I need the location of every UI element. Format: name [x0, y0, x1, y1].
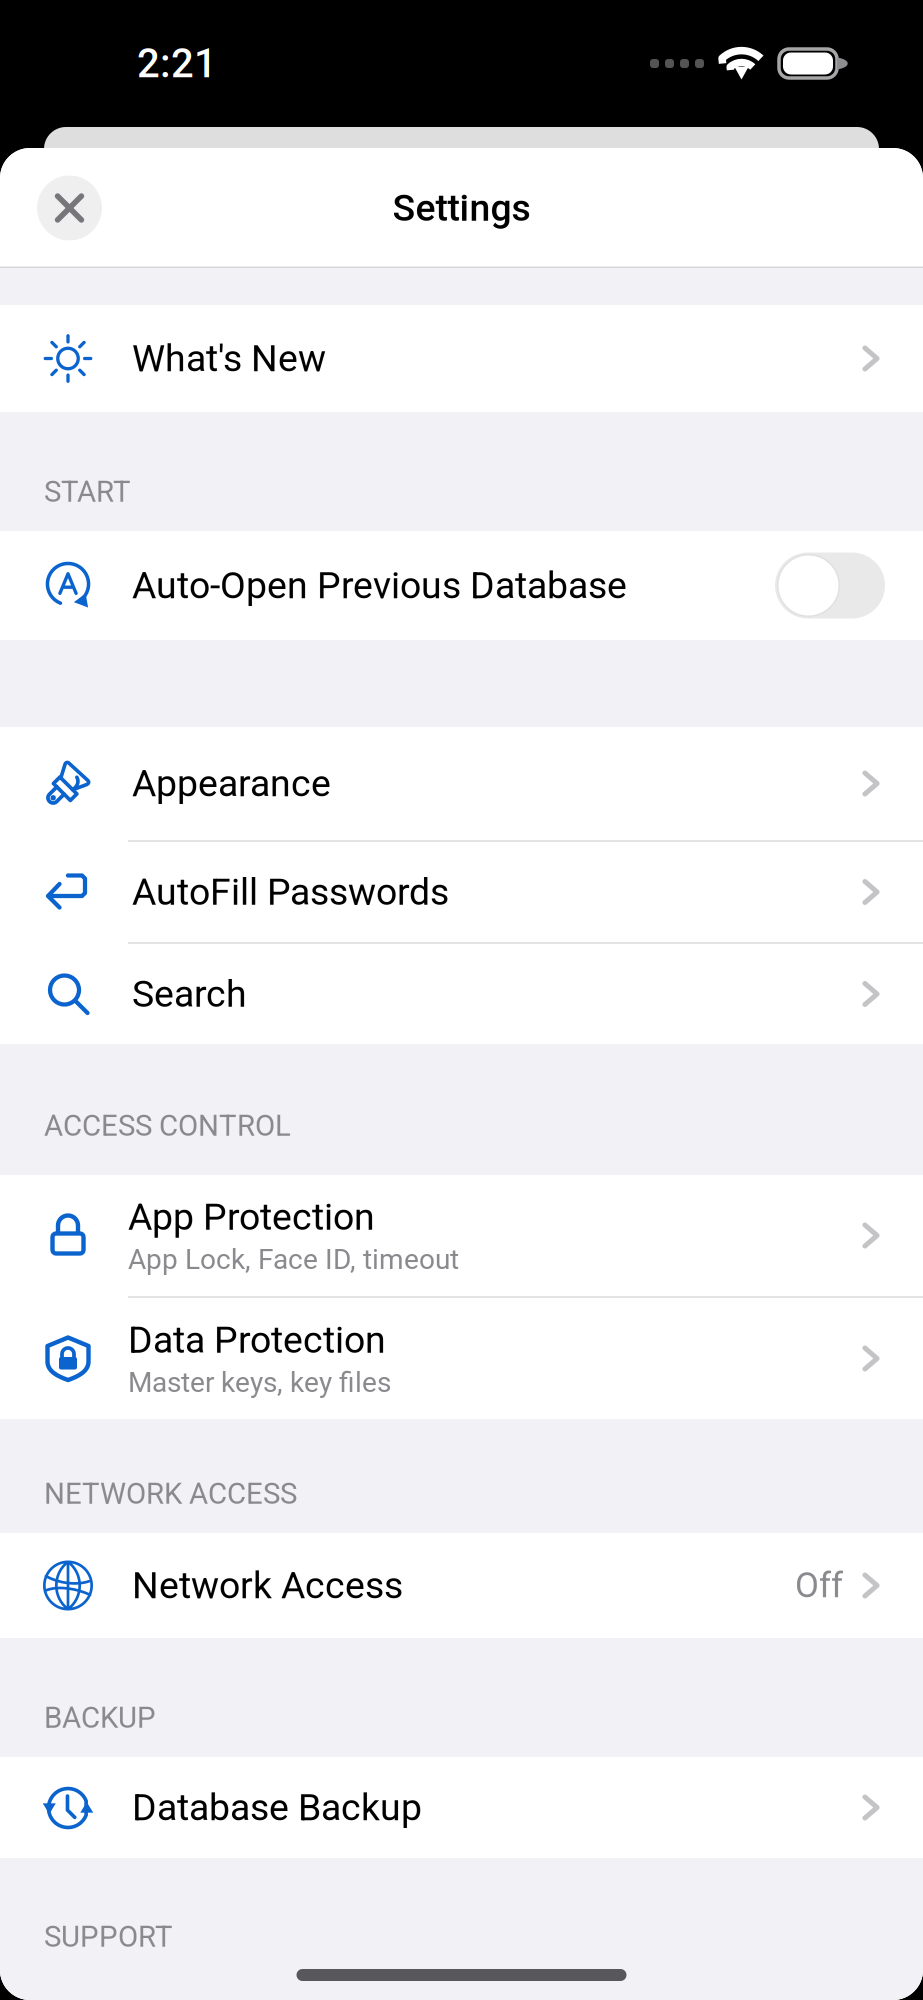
staticText: Appearance [132, 762, 331, 805]
button[interactable]: App Protection [0, 1175, 923, 1296]
button[interactable]: Network Access [0, 1533, 923, 1638]
button[interactable]: Close [37, 175, 102, 240]
staticText: Master keys, key files [128, 1366, 391, 1399]
staticText: Data Protection [128, 1318, 386, 1362]
staticText: AutoFill Passwords [132, 870, 449, 914]
button[interactable]: What's New [0, 305, 923, 412]
staticText: Settings [392, 186, 530, 230]
staticText: 2:21 [137, 40, 217, 87]
button[interactable]: AutoFill Passwords [0, 842, 923, 942]
staticText: START [44, 475, 131, 509]
button[interactable]: Data Protection [0, 1298, 923, 1419]
button[interactable]: Search [0, 944, 923, 1044]
staticText: Search [132, 972, 247, 1016]
staticText: BACKUP [44, 1701, 156, 1735]
staticText: SUPPORT [44, 1920, 173, 1954]
staticText: NETWORK ACCESS [44, 1477, 297, 1511]
button[interactable]: Appearance [0, 727, 923, 840]
staticText: Network Access [132, 1564, 403, 1607]
staticText: App Protection [128, 1195, 375, 1239]
staticText: What's New [132, 337, 326, 380]
staticText: Off [795, 1565, 843, 1606]
button[interactable]: Database Backup [0, 1757, 923, 1858]
button[interactable]: Auto-Open Previous Database [0, 531, 923, 640]
staticText: Auto-Open Previous Database [132, 564, 627, 607]
staticText: ACCESS CONTROL [44, 1109, 291, 1143]
staticText: App Lock, Face ID, timeout [128, 1243, 459, 1276]
staticText: Database Backup [132, 1786, 422, 1829]
